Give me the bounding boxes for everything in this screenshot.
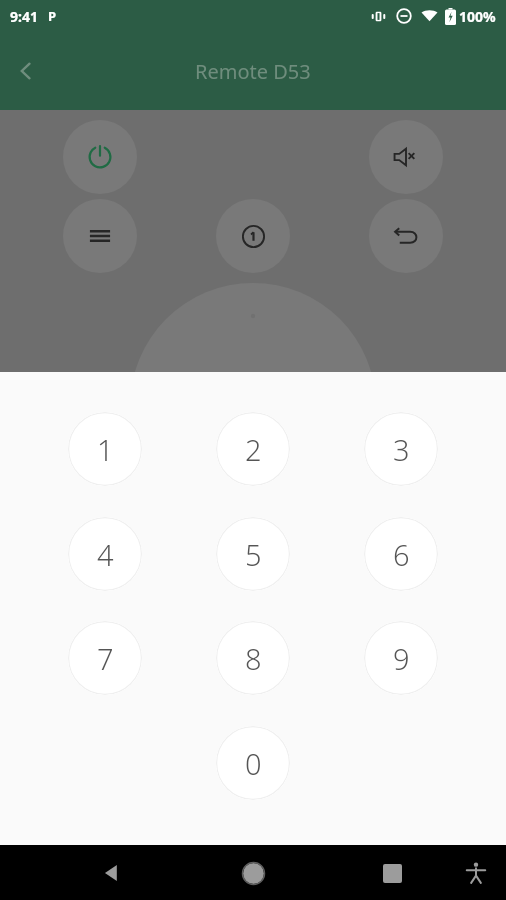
button[interactable]: Return [369,199,443,273]
button[interactable]: 9 [364,621,438,695]
button[interactable]: Info [216,199,290,273]
staticText: 4 [97,535,114,574]
staticText: 1 [97,430,114,469]
button[interactable]: Mute [369,120,443,194]
button[interactable]: 1 [68,412,142,486]
staticText: 0 [245,744,262,783]
button[interactable]: Power [63,120,137,194]
button[interactable]: 3 [364,412,438,486]
staticText: 7 [97,639,114,678]
staticText: 5 [245,535,262,574]
button[interactable]: Menu [63,199,137,273]
button[interactable]: 7 [68,621,142,695]
staticText: 6 [393,535,410,574]
button[interactable]: 5 [216,517,290,591]
button[interactable]: Recents [368,849,416,897]
button[interactable]: Back [3,48,49,94]
staticText: Remote D53 [195,58,311,85]
staticText: 8 [245,639,262,678]
button[interactable]: 0 [216,726,290,800]
staticText: P [48,7,57,25]
staticText: 3 [393,430,410,469]
button[interactable]: 8 [216,621,290,695]
button[interactable]: Home [229,849,277,897]
staticText: 9:41 [10,7,38,26]
staticText: 9 [393,639,410,678]
button[interactable]: 2 [216,412,290,486]
staticText: 2 [245,430,262,469]
button[interactable]: 4 [68,517,142,591]
button[interactable]: 6 [364,517,438,591]
staticText: 100% [459,7,496,26]
button[interactable]: Back [88,849,136,897]
button[interactable]: Accessibility [454,851,498,895]
